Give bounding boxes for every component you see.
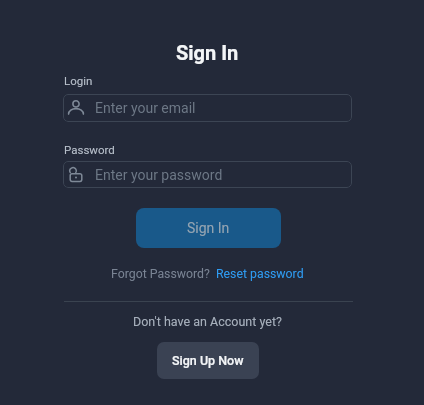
button[interactable]: Enter your password <box>63 161 352 188</box>
staticText: Sign In <box>187 220 230 236</box>
staticText: Enter your password <box>95 167 223 183</box>
button[interactable]: Sign Up Now <box>157 342 259 379</box>
button[interactable]: Enter your email <box>63 94 352 122</box>
staticText: Forgot Password? <box>111 267 210 281</box>
staticText: Sign In <box>176 41 239 64</box>
button[interactable]: Reset password <box>216 267 304 281</box>
staticText: Enter your email <box>95 100 196 116</box>
staticText: Login <box>64 74 93 87</box>
button[interactable]: Sign In <box>136 208 281 248</box>
staticText: Password <box>64 143 115 156</box>
staticText: Sign Up Now <box>172 353 244 368</box>
staticText: Don't have an Account yet? <box>133 314 282 329</box>
